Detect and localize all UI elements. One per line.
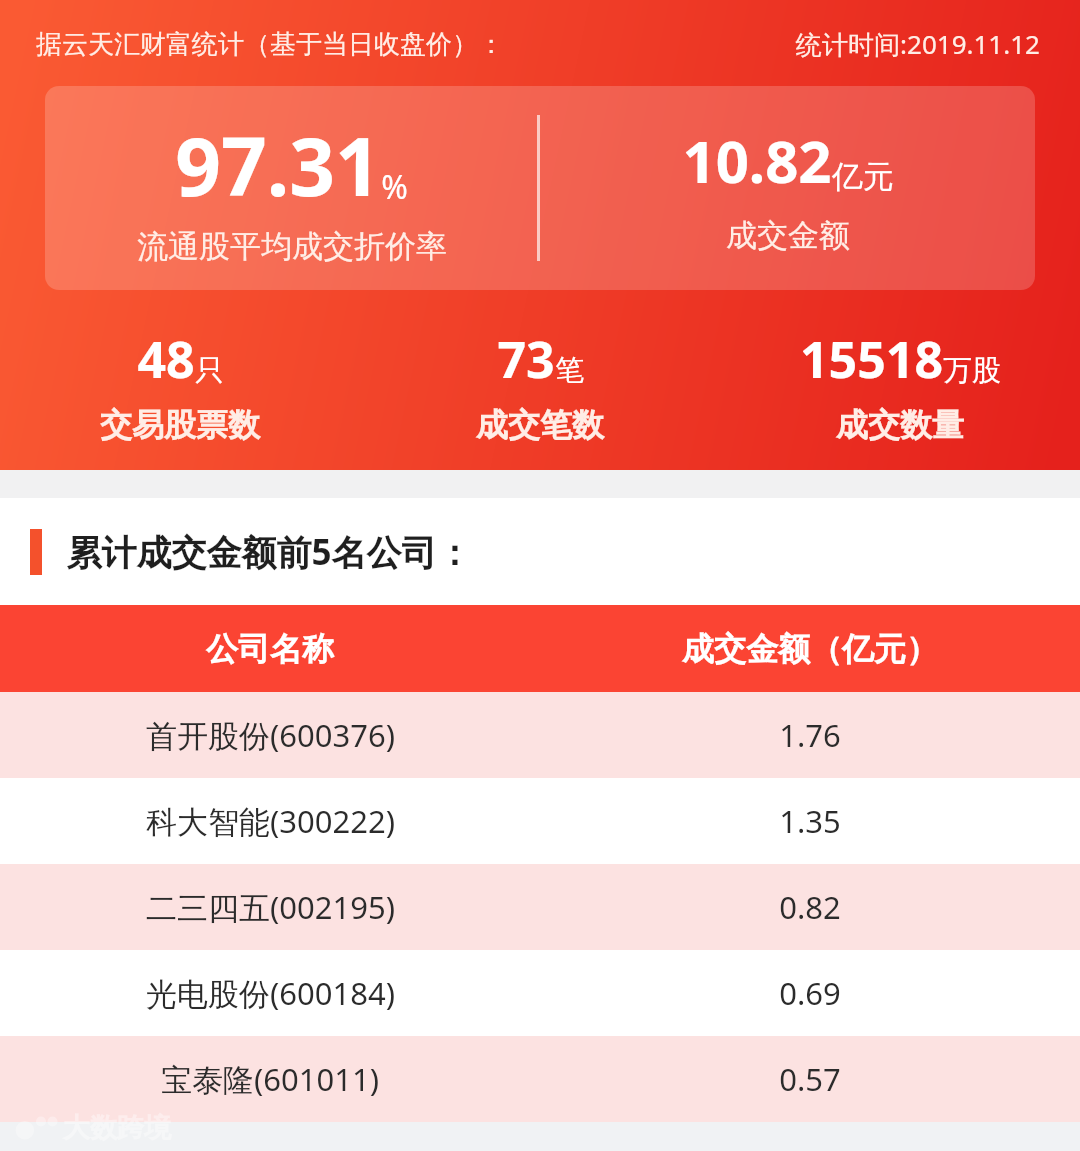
staticText: 累计成交金额前5名公司：	[66, 528, 472, 576]
staticText: 0.69	[779, 972, 841, 1014]
button[interactable]: 48	[0, 325, 360, 445]
staticText: 流通股平均成交折价率	[137, 227, 447, 266]
staticText: 97.31	[175, 110, 381, 219]
staticText: 亿元	[832, 157, 894, 196]
button[interactable]: 科大智能(300222)	[0, 778, 1080, 864]
staticText: 成交数量	[836, 405, 964, 445]
staticText: 只	[195, 352, 224, 389]
staticText: 据云天汇财富统计（基于当日收盘价）：	[36, 28, 504, 61]
staticText: 成交金额	[726, 216, 850, 255]
button[interactable]: 累计成交金额前5名公司：	[0, 498, 1080, 605]
staticText: 0.82	[779, 886, 841, 928]
button[interactable]: 首开股份(600376)	[0, 692, 1080, 778]
button[interactable]: 97.31	[45, 86, 1035, 290]
staticText: 公司名称	[206, 629, 334, 669]
button[interactable]: 二三四五(002195)	[0, 864, 1080, 950]
staticText: 笔	[555, 352, 584, 389]
button[interactable]: 宝泰隆(601011)	[0, 1036, 1080, 1122]
staticText: 万股	[943, 352, 1001, 389]
staticText: 宝泰隆(601011)	[161, 1058, 379, 1100]
staticText: 1.35	[779, 800, 841, 842]
staticText: 首开股份(600376)	[146, 714, 395, 756]
staticText: 1.76	[779, 714, 841, 756]
staticText: 交易股票数	[100, 405, 260, 445]
staticText: 二三四五(002195)	[146, 886, 395, 928]
staticText: 成交金额（亿元）	[682, 629, 938, 669]
staticText: 光电股份(600184)	[146, 972, 395, 1014]
staticText: 大数跨境	[63, 1111, 171, 1145]
button[interactable]: 15518	[720, 325, 1080, 445]
button[interactable]: 光电股份(600184)	[0, 950, 1080, 1036]
staticText: 48	[137, 325, 195, 393]
staticText: 科大智能(300222)	[146, 800, 395, 842]
staticText: 统计时间:2019.11.12	[796, 26, 1040, 62]
button[interactable]: 73	[360, 325, 720, 445]
staticText: 15518	[800, 325, 943, 393]
other: 大数跨境 watermark	[12, 1111, 171, 1145]
staticText: %	[381, 165, 408, 209]
staticText: 73	[497, 325, 555, 393]
staticText: 成交笔数	[476, 405, 604, 445]
staticText: 10.82	[682, 121, 832, 200]
staticText: 0.57	[779, 1058, 841, 1100]
